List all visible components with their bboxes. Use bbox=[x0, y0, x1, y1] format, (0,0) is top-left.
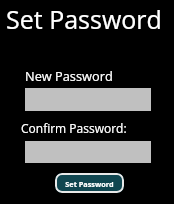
button[interactable]: Set Password bbox=[55, 173, 124, 193]
staticText: Set Password bbox=[65, 179, 114, 189]
staticText: New Password bbox=[25, 67, 113, 84]
staticText: Confirm Password: bbox=[21, 120, 127, 136]
staticText: Set Password bbox=[6, 2, 162, 36]
